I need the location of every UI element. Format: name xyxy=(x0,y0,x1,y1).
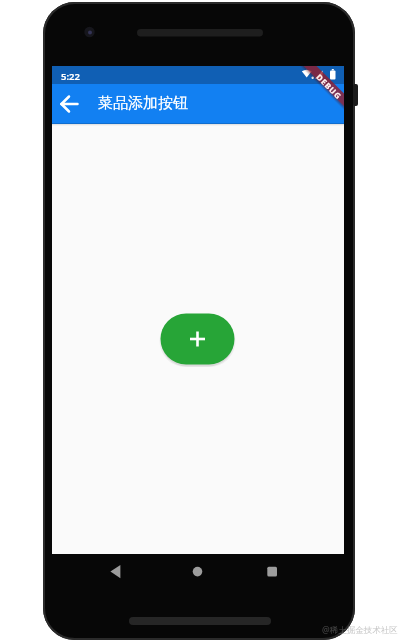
staticText: @稀土掘金技术社区 xyxy=(322,624,398,636)
staticText: 5:22 xyxy=(61,70,80,83)
staticText: DEBUG xyxy=(316,71,344,100)
staticText: 菜品添加按钮 xyxy=(98,94,188,113)
